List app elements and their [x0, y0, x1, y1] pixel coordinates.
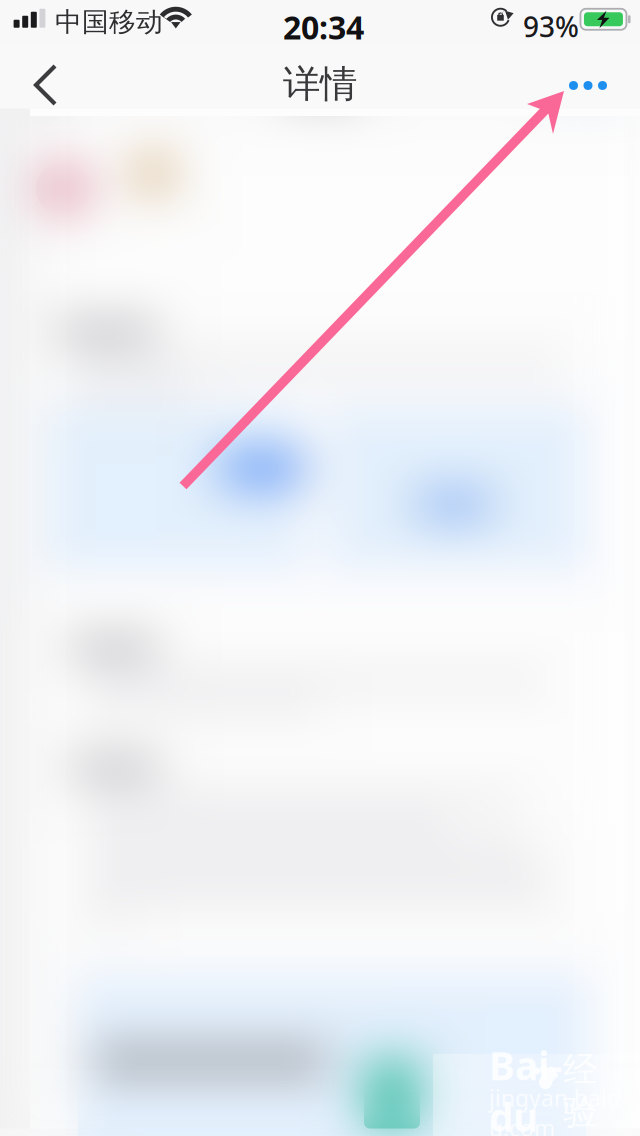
button[interactable]: Back [0, 43, 84, 117]
staticText: 详情 [283, 61, 357, 107]
staticText: 93% [523, 8, 579, 45]
staticText: 20:34 [283, 6, 364, 48]
staticText: 中国移动 [55, 6, 163, 39]
staticText: Baidu [489, 1040, 562, 1136]
staticText: 经验 [563, 1048, 598, 1134]
button[interactable]: More options [549, 43, 627, 103]
staticText: jingyan.baidu.com [489, 1083, 628, 1136]
